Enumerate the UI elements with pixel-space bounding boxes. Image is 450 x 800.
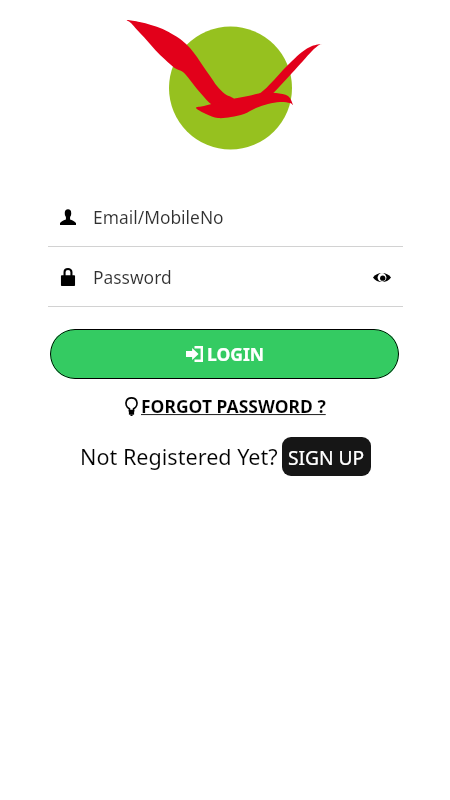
staticText: SIGN UP	[288, 444, 365, 470]
button[interactable]: Show password	[373, 262, 403, 292]
button[interactable]: FORGOT PASSWORD ?	[125, 394, 326, 418]
staticText: Email/MobileNo	[93, 205, 224, 229]
button[interactable]: Password	[48, 265, 373, 289]
staticText: LOGIN	[207, 342, 264, 366]
button[interactable]: LOGIN	[50, 329, 399, 379]
button[interactable]: Email/MobileNo	[48, 197, 403, 237]
staticText: Not Registered Yet?	[80, 442, 278, 471]
button[interactable]: SIGN UP	[282, 437, 371, 476]
staticText: Password	[93, 265, 172, 289]
staticText: FORGOT PASSWORD ?	[141, 394, 326, 418]
